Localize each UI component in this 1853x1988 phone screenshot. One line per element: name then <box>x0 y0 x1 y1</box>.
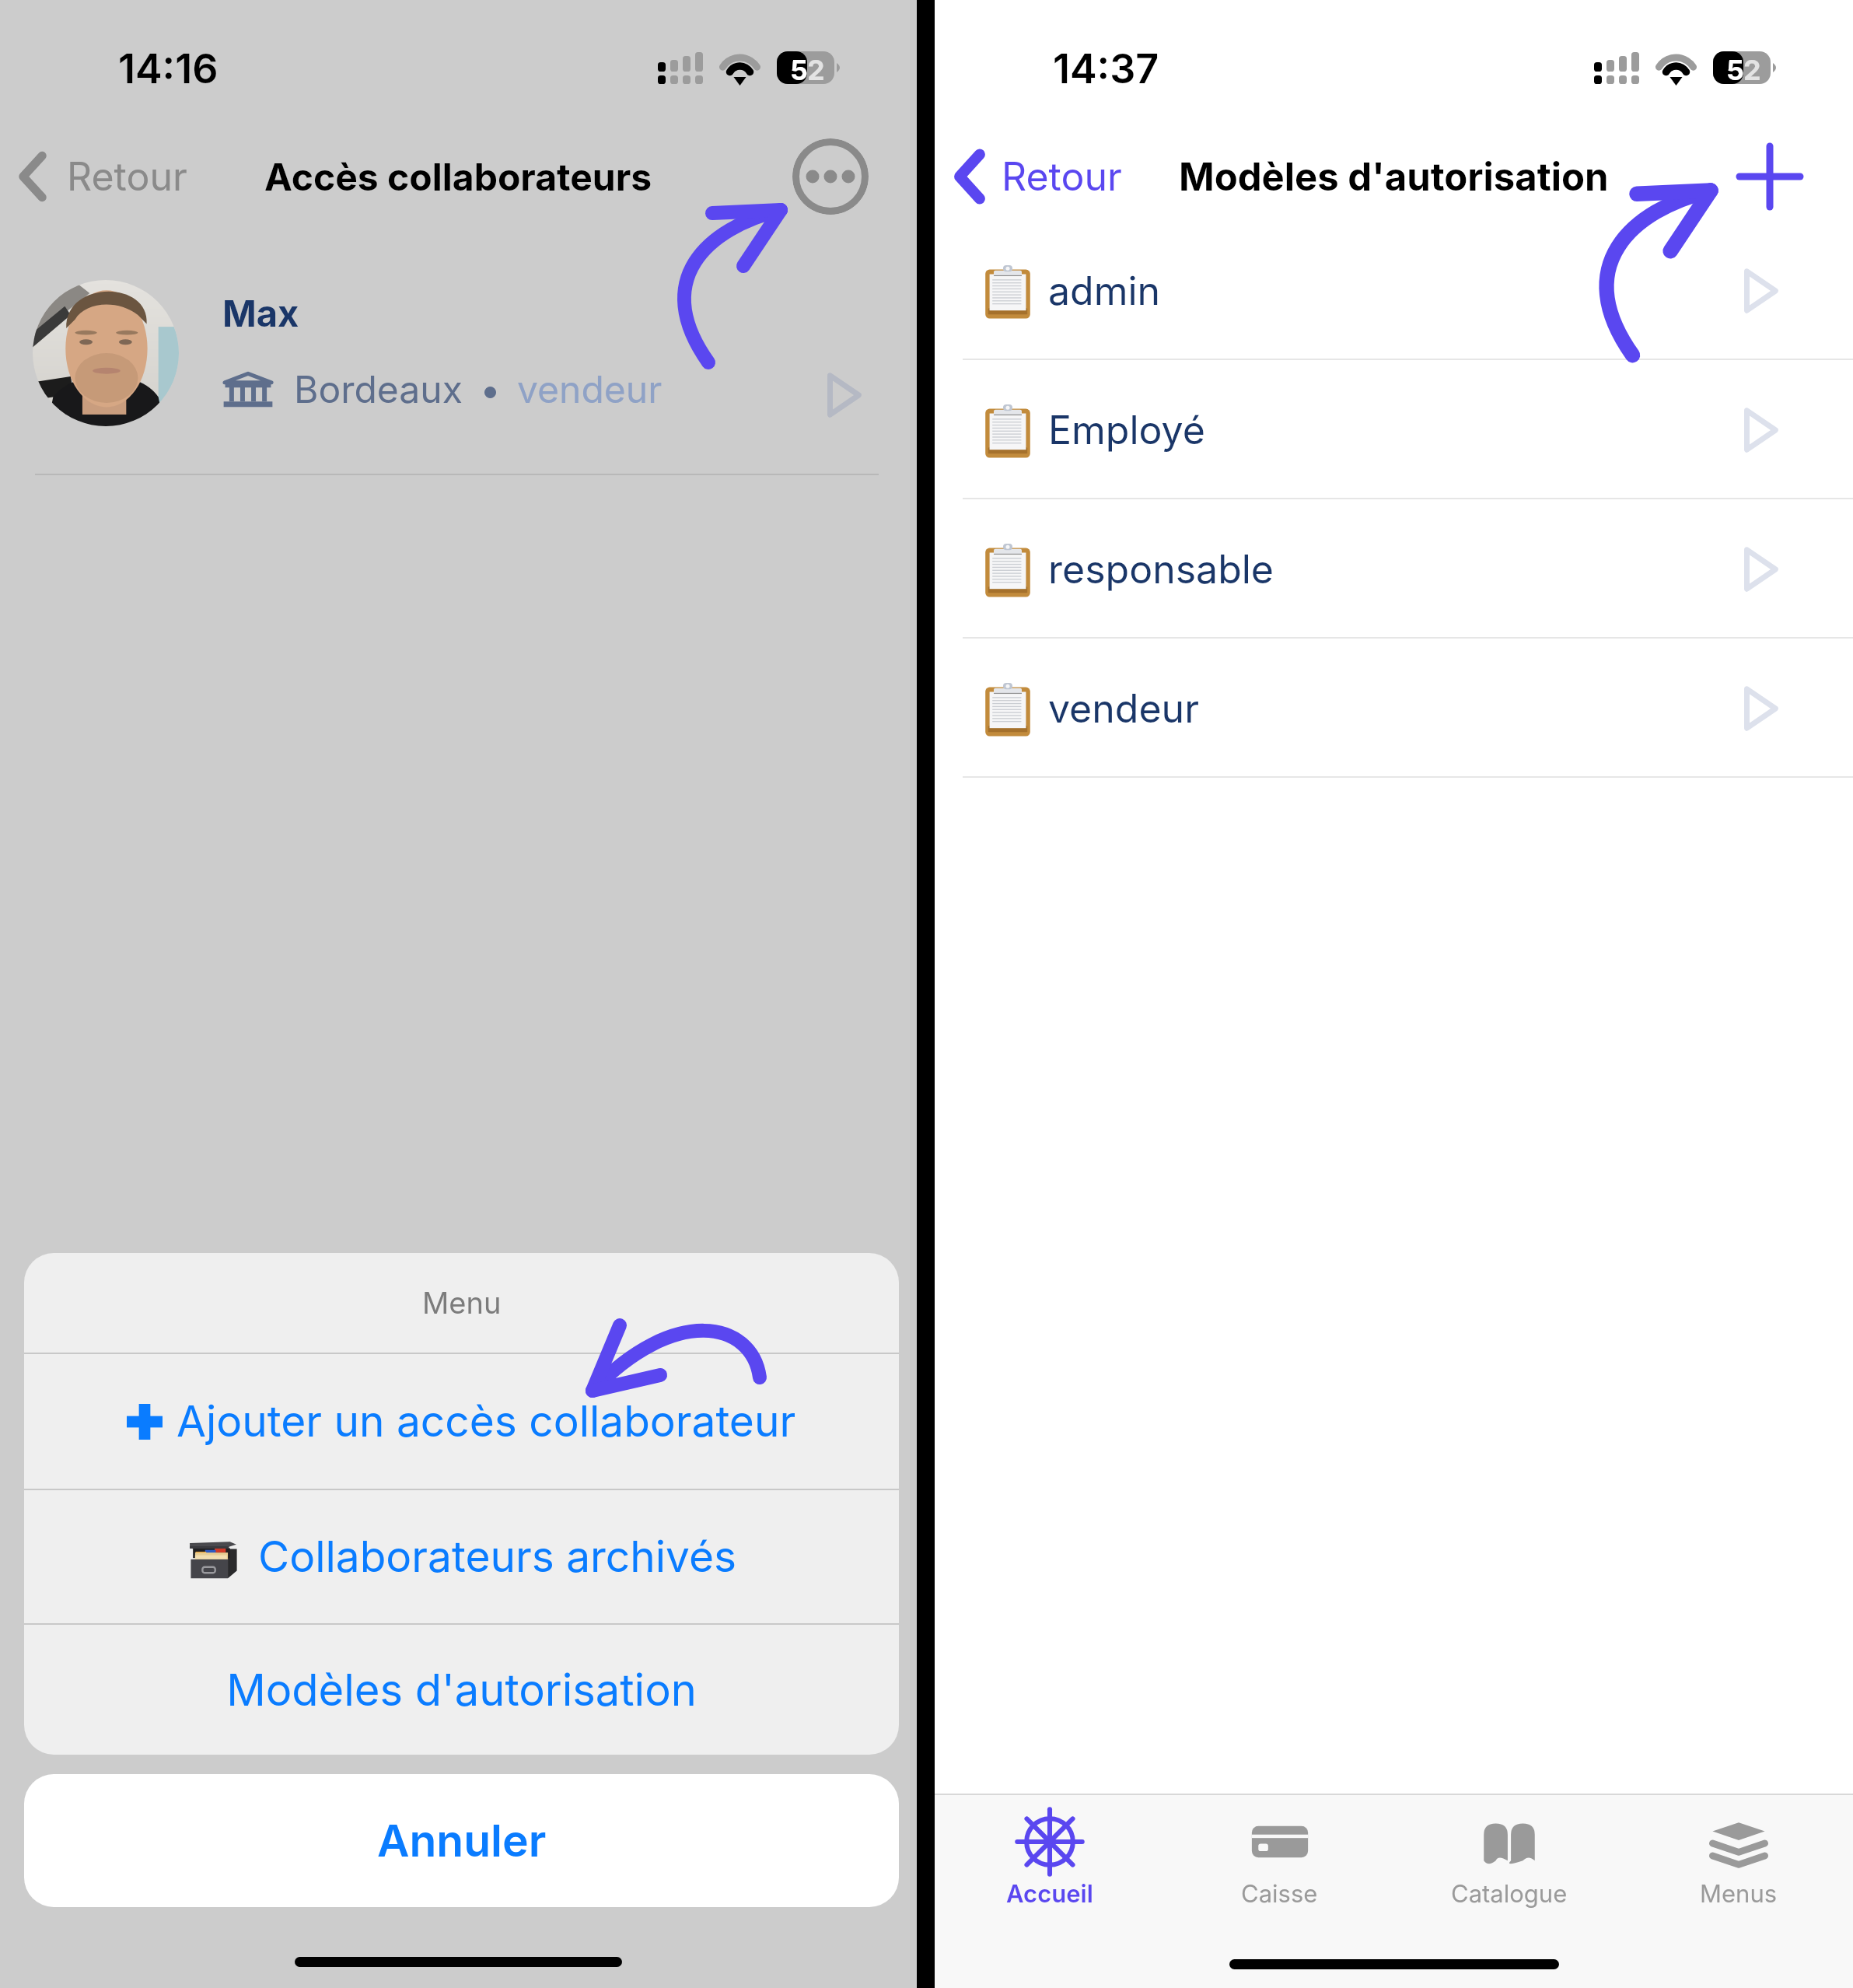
staticText: Menus <box>1700 1879 1778 1909</box>
button[interactable]: Retour <box>955 122 1122 231</box>
staticText: Bordeaux <box>294 366 463 411</box>
staticText: Employé <box>1048 407 1205 453</box>
staticText: Annuler <box>377 1814 547 1867</box>
staticText: admin <box>1048 268 1161 314</box>
button[interactable]: vendeur <box>935 639 1853 778</box>
staticText: Retour <box>1002 153 1122 200</box>
staticText: Modèles d'autorisation <box>1179 154 1609 200</box>
staticText: Max <box>222 291 299 335</box>
staticText: Catalogue <box>1451 1879 1568 1909</box>
staticText: responsable <box>1048 546 1274 593</box>
staticText: Accès collaborateurs <box>264 154 652 199</box>
button[interactable]: Accueil <box>935 1795 1165 1988</box>
button[interactable]: Modèles d'autorisation <box>24 1625 899 1755</box>
button[interactable]: Ajouter un accès collaborateur <box>24 1354 899 1489</box>
staticText: 14:16 <box>118 44 219 93</box>
staticText: • <box>480 366 501 411</box>
button[interactable]: admin <box>935 221 1853 360</box>
staticText: Menu <box>422 1285 502 1321</box>
staticText: 14:37 <box>1053 44 1159 93</box>
button[interactable]: Annuler <box>24 1774 899 1907</box>
button[interactable]: Max <box>0 257 917 474</box>
staticText: 2 <box>1743 53 1761 87</box>
staticText: 5 <box>790 53 809 87</box>
staticText: 2 <box>807 53 825 87</box>
button[interactable]: Employé <box>935 360 1853 499</box>
button[interactable]: Retour <box>19 122 187 231</box>
staticText: Caisse <box>1241 1879 1318 1909</box>
button[interactable]: Catalogue <box>1394 1795 1624 1988</box>
staticText: vendeur <box>1048 685 1199 732</box>
button[interactable]: Menus <box>1624 1795 1853 1988</box>
staticText: Retour <box>67 153 187 200</box>
staticText: Collaborateurs archivés <box>258 1531 737 1583</box>
button[interactable]: Collaborateurs archivés <box>24 1490 899 1623</box>
staticText: vendeur <box>517 366 663 411</box>
staticText: Accueil <box>1006 1879 1093 1909</box>
button[interactable]: responsable <box>935 499 1853 639</box>
staticText: Modèles d'autorisation <box>226 1664 697 1717</box>
button[interactable]: Caisse <box>1165 1795 1394 1988</box>
button[interactable]: Plus d'options <box>792 138 869 215</box>
button[interactable]: Ajouter un modèle <box>1727 134 1813 219</box>
staticText: Ajouter un accès collaborateur <box>177 1395 796 1447</box>
staticText: 5 <box>1726 53 1745 87</box>
